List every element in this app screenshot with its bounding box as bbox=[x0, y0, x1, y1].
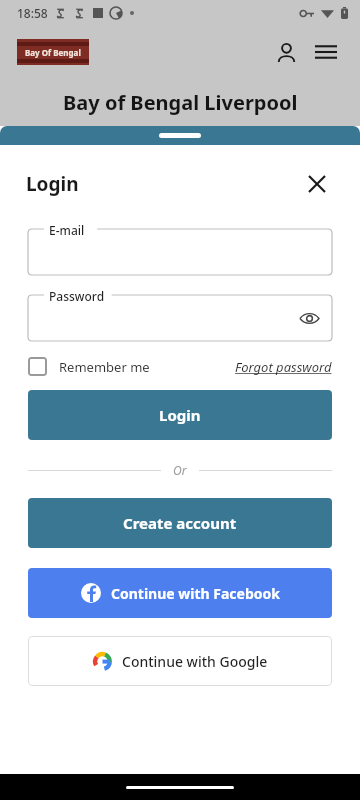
button[interactable]: Create account bbox=[28, 498, 332, 548]
staticText: Bay Of Bengal bbox=[25, 47, 81, 58]
button[interactable]: Remember me bbox=[28, 357, 150, 376]
button[interactable]: Account bbox=[266, 32, 306, 72]
staticText: Password bbox=[49, 288, 105, 304]
staticText: Create account bbox=[123, 513, 237, 533]
button[interactable]: Continue with Google bbox=[28, 636, 332, 686]
staticText: Remember me bbox=[59, 358, 150, 376]
staticText: E-mail bbox=[49, 222, 85, 238]
button[interactable]: Bay Of Bengal logo bbox=[17, 39, 89, 65]
button[interactable]: Show password bbox=[294, 303, 324, 333]
button[interactable]: Continue with Facebook bbox=[28, 568, 332, 618]
staticText: Login bbox=[159, 405, 201, 425]
button[interactable]: Close bbox=[300, 167, 334, 201]
button[interactable]: Menu bbox=[306, 32, 346, 72]
button[interactable]: Forgot password bbox=[235, 358, 332, 376]
staticText: Bay of Bengal Liverpool bbox=[63, 89, 298, 116]
staticText: 18:58 bbox=[17, 5, 48, 21]
staticText: Forgot password bbox=[235, 358, 332, 376]
button[interactable]: Login bbox=[28, 390, 332, 440]
staticText: Or bbox=[173, 462, 187, 478]
staticText: Continue with Facebook bbox=[111, 584, 280, 603]
staticText: Login bbox=[26, 171, 79, 197]
staticText: Continue with Google bbox=[122, 652, 268, 671]
